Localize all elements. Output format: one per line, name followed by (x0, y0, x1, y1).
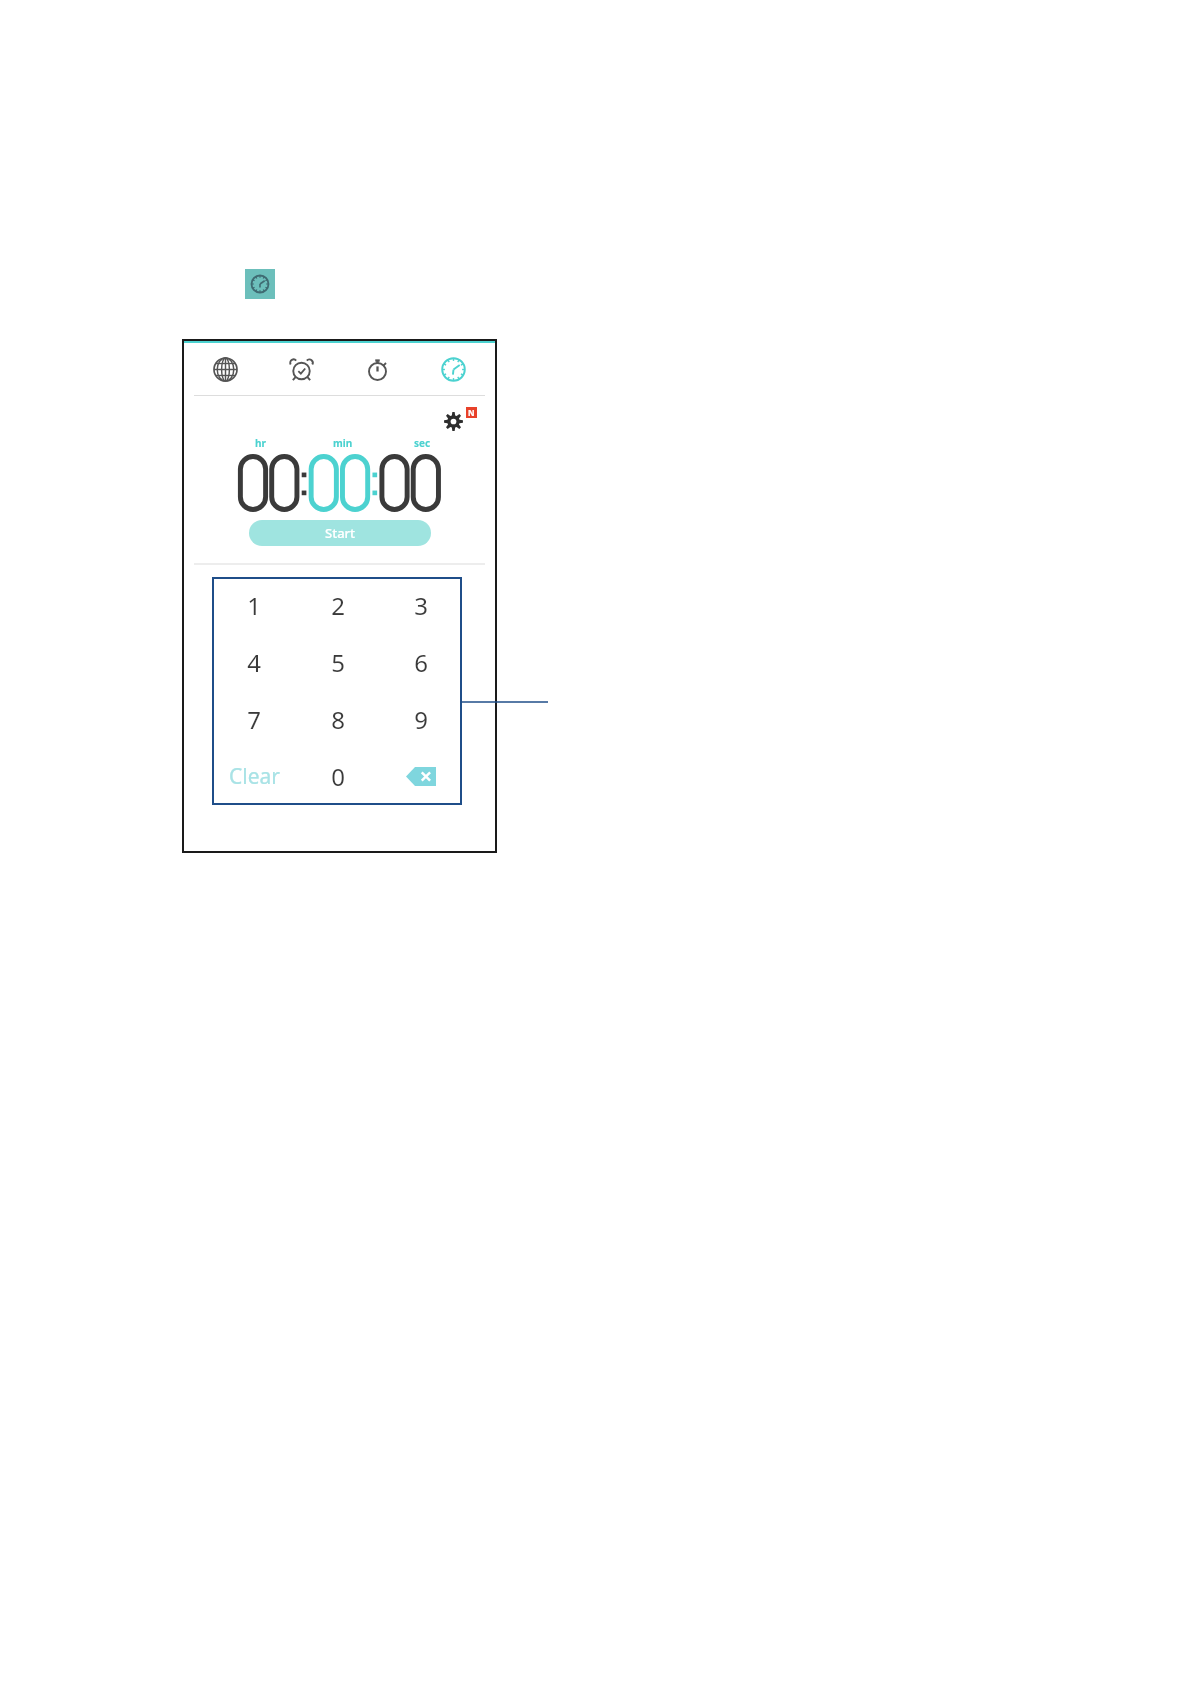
staticText: 2 (331, 589, 345, 622)
button[interactable]: Clear (212, 748, 296, 805)
button[interactable]: Backspace (379, 748, 462, 805)
button[interactable]: 2 (296, 577, 379, 634)
staticText: Clear (229, 762, 280, 791)
button[interactable]: 8 (296, 691, 379, 748)
staticText: 6 (414, 646, 428, 679)
button[interactable]: 0 (296, 748, 379, 805)
button[interactable]: Settings (444, 407, 477, 426)
staticText: 9 (414, 703, 428, 736)
staticText: 1 (247, 589, 261, 622)
staticText: 8 (331, 703, 345, 736)
button[interactable]: 1 (212, 577, 296, 634)
staticText: 3 (414, 589, 428, 622)
button[interactable]: 7 (212, 691, 296, 748)
staticText: 0 (331, 760, 345, 793)
button[interactable]: Timer (415, 343, 491, 395)
staticText: hr (255, 436, 266, 450)
button[interactable]: 3 (379, 577, 462, 634)
staticText: 5 (331, 646, 345, 679)
button[interactable]: World clock (188, 343, 263, 395)
button[interactable]: Alarm (263, 343, 339, 395)
staticText: 4 (247, 646, 261, 679)
button[interactable]: 9 (379, 691, 462, 748)
staticText: sec (414, 436, 431, 450)
button[interactable]: 5 (296, 634, 379, 691)
staticText: N (468, 407, 475, 418)
button[interactable]: 6 (379, 634, 462, 691)
staticText: 7 (247, 703, 261, 736)
button[interactable]: Start (249, 520, 431, 546)
button[interactable]: 4 (212, 634, 296, 691)
staticText: Start (325, 524, 356, 542)
button[interactable]: Stopwatch (339, 343, 415, 395)
staticText: min (333, 436, 353, 450)
button[interactable]: Timer icon (245, 269, 275, 299)
